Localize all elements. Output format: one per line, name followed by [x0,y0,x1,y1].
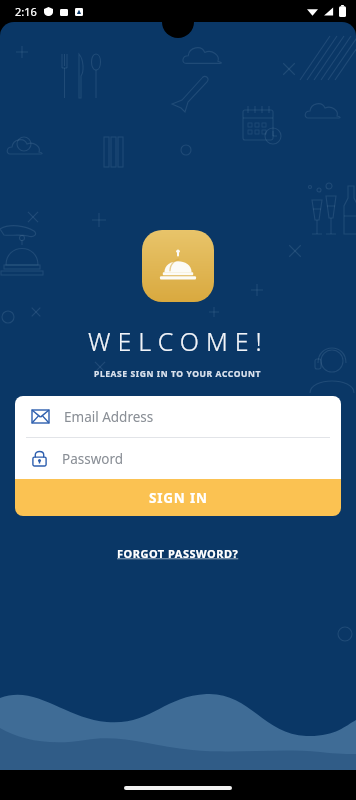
button[interactable]: FORGOT PASSWORD? [109,542,247,565]
staticText: Password [62,450,124,468]
staticText: 2:16 [15,4,37,19]
staticText: SIGN IN [149,489,208,507]
button[interactable]: Email Address [15,396,341,437]
staticText: WELCOME! [88,324,269,358]
button[interactable]: Password [15,438,341,479]
button[interactable]: App logo [142,230,214,302]
button[interactable]: SIGN IN [15,479,341,516]
staticText: FORGOT PASSWORD? [117,546,239,561]
staticText: Email Address [64,408,154,426]
staticText: PLEASE SIGN IN TO YOUR ACCOUNT [94,368,262,380]
